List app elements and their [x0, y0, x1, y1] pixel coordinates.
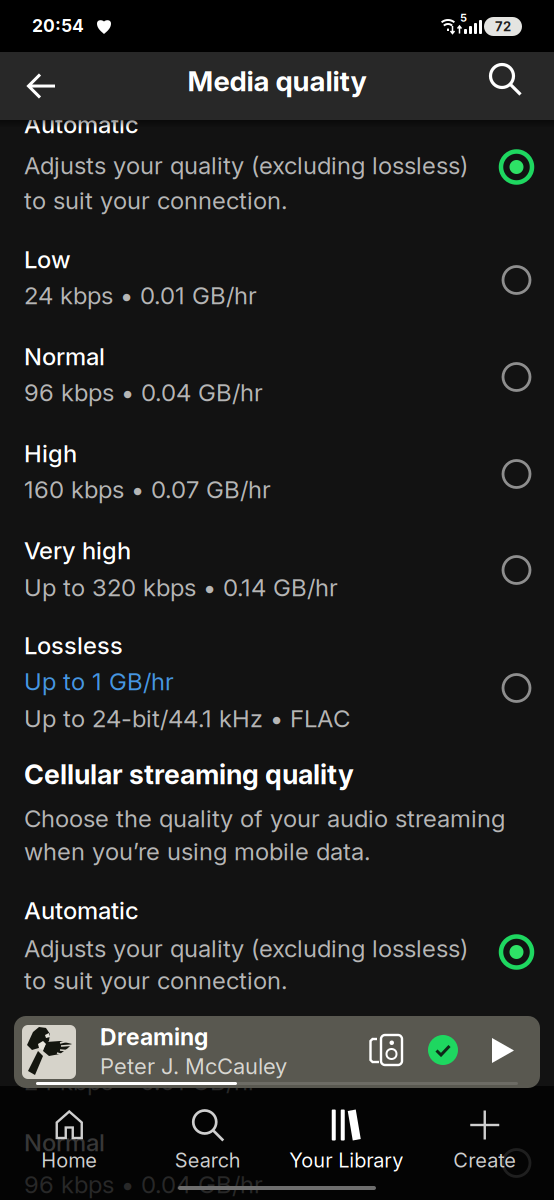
staticText: when you’re using mobile data.	[24, 837, 371, 866]
staticText: Low	[24, 245, 71, 274]
button[interactable]: Lossless	[0, 625, 554, 736]
button[interactable]: Home	[0, 1108, 138, 1174]
staticText: 96 kbps • 0.04 GB/hr	[24, 1170, 263, 1199]
button[interactable]: Play	[492, 1038, 514, 1063]
staticText: Very high	[24, 536, 131, 565]
button[interactable]: Back	[18, 64, 62, 108]
staticText: to suit your connection.	[24, 966, 288, 995]
staticText: Create	[453, 1148, 516, 1172]
staticText: Normal	[24, 342, 105, 371]
staticText: Up to 1 GB/hr	[24, 667, 174, 696]
staticText: Lossless	[24, 631, 123, 660]
staticText: to suit your connection.	[24, 186, 288, 215]
staticText: Peter J. McCauley	[100, 1053, 287, 1080]
button[interactable]: Normal	[0, 1122, 554, 1200]
staticText: High	[24, 439, 77, 468]
staticText: 160 kbps • 0.07 GB/hr	[24, 475, 271, 504]
staticText: Up to 320 kbps • 0.14 GB/hr	[24, 573, 338, 602]
button[interactable]: Connect to a device	[366, 1032, 406, 1068]
staticText: Automatic	[24, 896, 139, 925]
staticText: 5	[460, 11, 467, 24]
button[interactable]: Search	[138, 1108, 277, 1174]
button[interactable]: Dreaming	[14, 1016, 540, 1088]
staticText: 24 kbps • 0.01 GB/hr	[24, 281, 257, 310]
staticText: Search	[175, 1148, 241, 1172]
staticText: 20:54	[32, 15, 84, 36]
button[interactable]: Downloaded	[428, 1035, 458, 1065]
staticText: Up to 24-bit/44.1 kHz • FLAC	[24, 704, 350, 733]
button[interactable]: Search	[488, 62, 532, 106]
staticText: Choose the quality of your audio streami…	[24, 804, 505, 833]
button[interactable]: Very high	[0, 530, 554, 605]
staticText: 96 kbps • 0.04 GB/hr	[24, 378, 263, 407]
button[interactable]: Low	[0, 1025, 554, 1099]
button[interactable]: Low	[0, 239, 554, 313]
button[interactable]: High	[0, 433, 554, 507]
staticText: Media quality	[187, 64, 366, 98]
staticText: Normal	[24, 1128, 105, 1157]
button[interactable]: Your Library	[277, 1108, 415, 1174]
staticText: Adjusts your quality (excluding lossless…	[24, 934, 468, 963]
staticText: 72	[495, 19, 511, 34]
button[interactable]: Automatic	[0, 104, 554, 218]
button[interactable]: Create	[415, 1108, 554, 1174]
staticText: Automatic	[24, 110, 139, 139]
button[interactable]: Automatic	[0, 890, 554, 998]
button[interactable]: Normal	[0, 336, 554, 410]
staticText: Home	[41, 1148, 97, 1172]
staticText: Adjusts your quality (excluding lossless…	[24, 151, 468, 180]
staticText: Low	[24, 1031, 71, 1060]
staticText: Cellular streaming quality	[24, 758, 354, 791]
staticText: Your Library	[289, 1148, 403, 1172]
staticText: 24 kbps • 0.01 GB/hr	[24, 1067, 257, 1096]
staticText: Dreaming	[100, 1023, 208, 1051]
